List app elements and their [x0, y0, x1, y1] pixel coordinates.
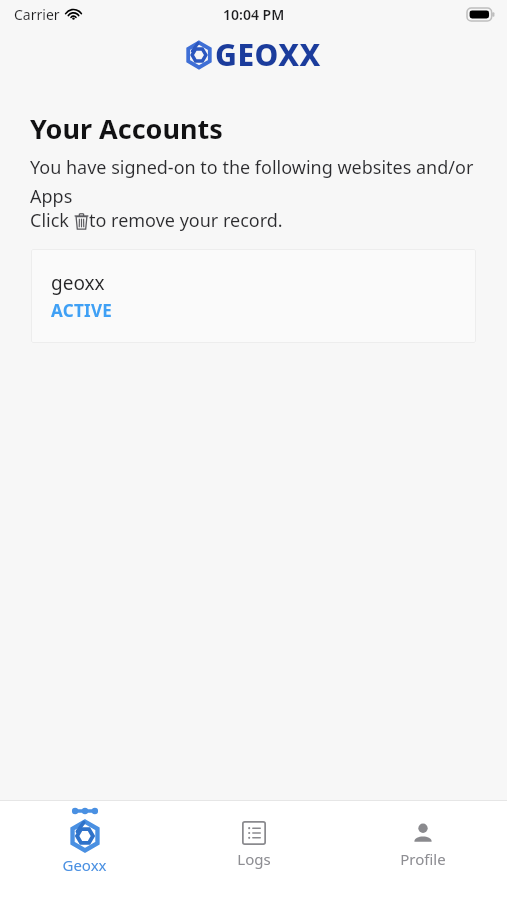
staticText: to remove your record.	[89, 208, 283, 233]
staticText: ACTIVE	[51, 299, 113, 322]
staticText: geoxx	[51, 270, 105, 296]
staticText: 10:04 PM	[223, 5, 285, 24]
staticText: Logs	[237, 849, 271, 869]
button[interactable]: Geoxx	[0, 801, 169, 875]
staticText: Carrier	[14, 5, 60, 24]
staticText: You have signed-on to the following webs…	[30, 155, 483, 208]
staticText: Your Accounts	[30, 110, 223, 147]
button[interactable]: geoxx	[31, 249, 476, 343]
staticText: Profile	[400, 849, 446, 869]
staticText: GEOXX	[215, 34, 321, 75]
staticText: Geoxx	[62, 855, 107, 875]
button[interactable]: Profile	[338, 801, 507, 869]
staticText: Click	[30, 208, 74, 233]
button[interactable]: Logs	[169, 801, 338, 869]
